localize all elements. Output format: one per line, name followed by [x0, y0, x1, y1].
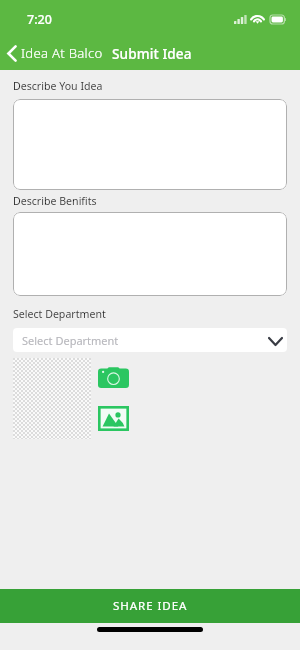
button[interactable]: Take photo	[98, 358, 135, 398]
staticText: Describe Benifits	[13, 194, 97, 208]
staticText: SHARE IDEA	[113, 598, 188, 614]
button[interactable]: Select Department	[13, 328, 287, 352]
button[interactable]	[13, 99, 287, 190]
button[interactable]: SHARE IDEA	[0, 589, 300, 623]
staticText: Select Department	[22, 333, 119, 348]
button[interactable]: Back to Idea At Balco	[0, 40, 107, 66]
staticText: Submit Idea	[112, 44, 192, 63]
staticText: 7:20	[27, 11, 52, 28]
staticText: Describe You Idea	[13, 79, 103, 93]
staticText: Idea At Balco	[21, 44, 103, 62]
staticText: Select Department	[13, 307, 106, 321]
button[interactable]	[13, 212, 287, 296]
button[interactable]: Pick image from gallery	[98, 398, 135, 439]
